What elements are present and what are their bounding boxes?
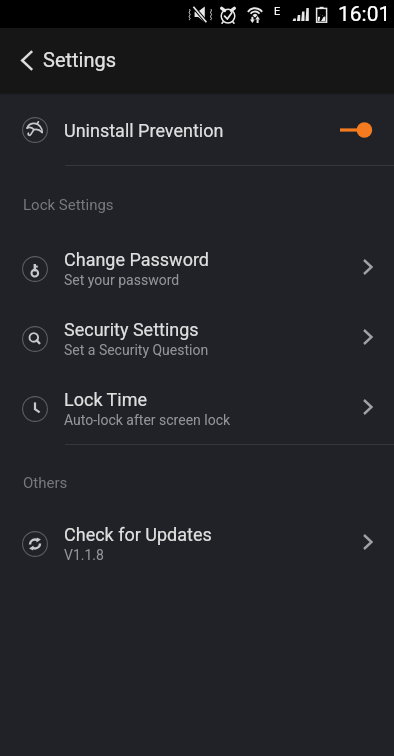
staticText: Settings (43, 48, 117, 71)
button[interactable]: Check for Updates (0, 509, 394, 579)
staticText: Uninstall Prevention (64, 120, 224, 141)
button[interactable]: Security Settings (0, 304, 394, 374)
staticText: Lock Settings (23, 196, 114, 214)
button[interactable]: Lock Time (0, 374, 394, 444)
button[interactable]: Uninstall Prevention toggle (320, 113, 374, 147)
staticText: Others (23, 474, 68, 492)
staticText: Check for Updates (64, 524, 212, 545)
staticText: Security Settings (64, 319, 199, 340)
staticText: Set your password (64, 272, 180, 288)
button[interactable]: Uninstall Prevention (0, 95, 394, 165)
button[interactable]: Change Password (0, 234, 394, 304)
staticText: 16:01 (338, 2, 391, 27)
button[interactable]: Back (0, 28, 43, 93)
staticText: Auto-lock after screen lock (64, 412, 231, 428)
staticText: Lock Time (64, 389, 148, 410)
staticText: V1.1.8 (64, 547, 104, 563)
staticText: Set a Security Question (64, 342, 209, 358)
staticText: E (274, 5, 281, 18)
staticText: Change Password (64, 249, 209, 270)
